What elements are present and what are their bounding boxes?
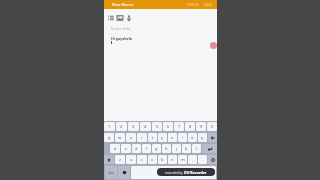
- staticText: Enter title: [111, 26, 131, 32]
- button[interactable]: a: [110, 144, 120, 153]
- button[interactable]: w: [115, 133, 125, 142]
- button[interactable]: j: [172, 144, 181, 153]
- button[interactable]: Checklist: [107, 14, 115, 22]
- staticText: i: [182, 135, 184, 140]
- button[interactable]: g: [152, 144, 161, 153]
- button[interactable]: Shift: [104, 155, 114, 164]
- staticText: 6: [167, 124, 170, 129]
- staticText: h: [165, 146, 168, 151]
- button[interactable]: CANCEL: [184, 1, 202, 8]
- button[interactable]: q: [104, 133, 114, 142]
- button[interactable]: c: [137, 155, 147, 164]
- button[interactable]: x: [126, 155, 136, 164]
- staticText: 0: [211, 124, 214, 129]
- staticText: 1: [108, 124, 111, 129]
- staticText: j: [176, 146, 178, 151]
- staticText: New Memo: [112, 2, 134, 7]
- button[interactable]: b: [158, 155, 167, 164]
- button[interactable]: m: [178, 155, 187, 164]
- staticText: y: [161, 135, 164, 140]
- button[interactable]: t: [148, 133, 157, 142]
- staticText: Hi guyshelo: [111, 36, 133, 41]
- button[interactable]: Add image: [116, 14, 124, 22]
- button[interactable]: d: [132, 144, 141, 153]
- staticText: DU Recorder: [184, 170, 207, 175]
- button[interactable]: p: [198, 133, 207, 142]
- staticText: p: [201, 135, 204, 140]
- button[interactable]: Recording indicator: [210, 42, 217, 49]
- staticText: k: [185, 146, 188, 151]
- staticText: l: [196, 146, 198, 151]
- staticText: o: [191, 135, 194, 140]
- staticText: f: [146, 146, 148, 151]
- button[interactable]: 0: [207, 122, 217, 131]
- staticText: z: [119, 157, 121, 162]
- staticText: x: [130, 157, 133, 162]
- button[interactable]: Backspace: [208, 133, 217, 142]
- staticText: 8: [189, 124, 192, 129]
- staticText: e: [130, 135, 133, 140]
- staticText: t: [152, 135, 154, 140]
- button[interactable]: 7: [174, 122, 184, 131]
- staticText: 7: [178, 124, 181, 129]
- button[interactable]: SAVE: [202, 1, 217, 8]
- button[interactable]: .: [198, 155, 207, 164]
- button[interactable]: v: [148, 155, 157, 164]
- staticText: 2: [120, 124, 123, 129]
- button[interactable]: Sym: [105, 166, 117, 179]
- button[interactable]: f: [142, 144, 151, 153]
- staticText: Sym: [108, 171, 114, 175]
- staticText: d: [135, 146, 138, 151]
- button[interactable]: Space: [131, 166, 216, 179]
- button[interactable]: Record audio: [125, 14, 133, 22]
- staticText: 4: [144, 124, 147, 129]
- staticText: u: [171, 135, 174, 140]
- button[interactable]: e: [126, 133, 136, 142]
- button[interactable]: y: [158, 133, 167, 142]
- staticText: ,: [192, 157, 194, 162]
- button[interactable]: h: [162, 144, 171, 153]
- button[interactable]: o: [188, 133, 197, 142]
- staticText: 3: [132, 124, 135, 129]
- button[interactable]: r: [137, 133, 147, 142]
- button[interactable]: 1: [104, 122, 115, 131]
- staticText: g: [155, 146, 158, 151]
- staticText: r: [141, 135, 143, 140]
- button[interactable]: 9: [196, 122, 206, 131]
- button[interactable]: z: [115, 155, 125, 164]
- staticText: b: [161, 157, 164, 162]
- button[interactable]: i: [178, 133, 187, 142]
- button[interactable]: ,: [188, 155, 197, 164]
- button[interactable]: k: [182, 144, 191, 153]
- staticText: n: [171, 157, 174, 162]
- button[interactable]: s: [121, 144, 131, 153]
- button[interactable]: 6: [163, 122, 173, 131]
- button[interactable]: u: [168, 133, 177, 142]
- staticText: recorded by: [165, 171, 184, 175]
- button[interactable]: 2: [116, 122, 127, 131]
- staticText: q: [108, 135, 111, 140]
- staticText: a: [114, 146, 117, 151]
- staticText: v: [151, 157, 154, 162]
- staticText: .: [202, 157, 204, 162]
- button[interactable]: l: [192, 144, 201, 153]
- staticText: s: [125, 146, 127, 151]
- button[interactable]: 8: [185, 122, 195, 131]
- staticText: 9: [200, 124, 203, 129]
- button[interactable]: 5: [152, 122, 162, 131]
- button[interactable]: Enter: [202, 144, 217, 153]
- button[interactable]: 4: [140, 122, 151, 131]
- button[interactable]: 3: [128, 122, 139, 131]
- staticText: w: [118, 135, 122, 140]
- button[interactable]: Language: [208, 155, 217, 164]
- staticText: m: [181, 157, 185, 162]
- button[interactable]: Emoji: [118, 166, 130, 179]
- staticText: c: [141, 157, 143, 162]
- staticText: 5: [156, 124, 159, 129]
- button[interactable]: n: [168, 155, 177, 164]
